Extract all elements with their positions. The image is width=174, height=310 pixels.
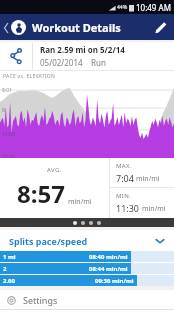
staticText: Splits pace/speed: [9, 235, 88, 247]
staticText: 8:57: [17, 177, 65, 210]
staticText: 8:01: [2, 87, 12, 94]
button[interactable]: 1 mi: [0, 251, 174, 262]
staticText: 9:: [2, 107, 7, 114]
staticText: Run: [91, 57, 106, 68]
staticText: 12:00: [2, 154, 15, 158]
button[interactable]: 8:01: [0, 80, 174, 158]
staticText: Ran 2.59 mi on 5/2/14: [40, 44, 125, 55]
staticText: 1 mi: [3, 253, 16, 261]
button[interactable]: 2.60: [0, 275, 174, 286]
staticText: 11:00: [2, 131, 15, 138]
button[interactable]: Ran 2.59 mi on 5/2/14: [0, 42, 174, 70]
staticText: MAX.: [116, 162, 133, 170]
staticText: min/mi: [68, 197, 92, 207]
staticText: 11:30: [116, 202, 140, 214]
button[interactable]: Back: [0, 14, 30, 40]
button[interactable]: AVG.: [0, 158, 109, 218]
button[interactable]: MIN.: [110, 188, 174, 218]
button[interactable]: Splits pace/speed: [0, 230, 174, 251]
staticText: MIN.: [116, 192, 132, 200]
staticText: Settings: [23, 294, 58, 306]
staticText: 08:40 min/mi: [89, 253, 128, 261]
button[interactable]: MAX.: [110, 158, 174, 187]
staticText: 05/02/2014: [40, 57, 83, 68]
staticText: 08:44 min/mi: [89, 265, 128, 273]
staticText: min/mi: [136, 174, 160, 184]
staticText: min/mi: [142, 204, 166, 214]
staticText: AVG.: [47, 166, 62, 174]
staticText: 7:04: [116, 172, 134, 184]
staticText: 2.60: [3, 277, 15, 285]
other: Collapse: [155, 236, 165, 246]
staticText: 10:49 AM: [136, 2, 171, 13]
button[interactable]: Edit: [146, 14, 174, 40]
button[interactable]: Settings: [0, 290, 174, 310]
staticText: Workout Details: [32, 20, 121, 35]
staticText: PACE vs. ELEVATION: [3, 73, 56, 80]
staticText: 44%: [117, 4, 128, 11]
staticText: 09:36 min/mi: [95, 277, 134, 285]
button[interactable]: 2: [0, 263, 174, 274]
staticText: 2: [3, 265, 7, 273]
